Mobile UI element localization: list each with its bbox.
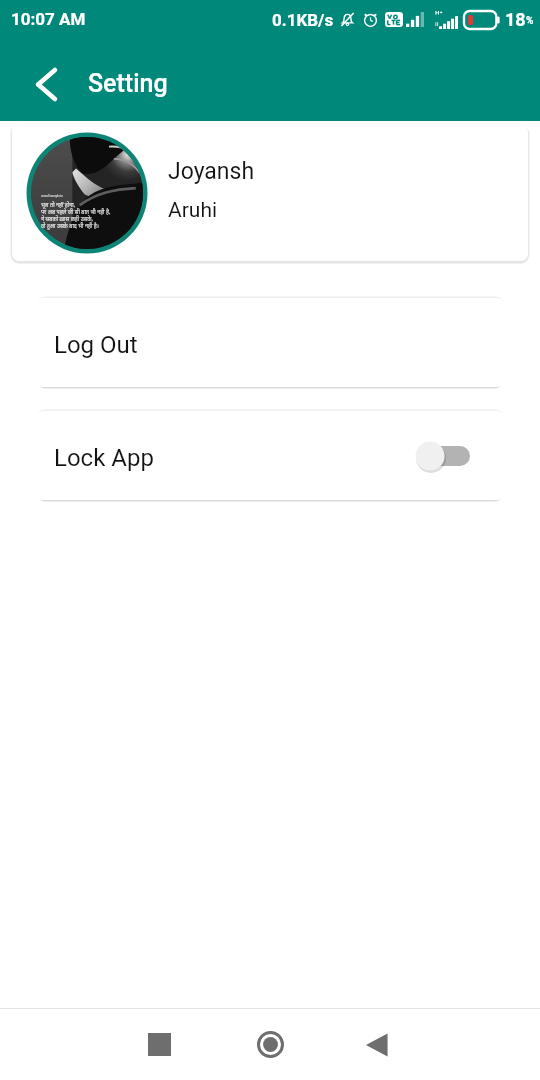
staticText: % [526,15,534,27]
button[interactable]: Lock App [37,411,503,500]
staticText: www.Example.in [41,194,64,198]
staticText: भूल तो नहीं होगा, पर अब पहले जी सी बात भ… [41,202,111,230]
button[interactable]: Recents [122,1009,196,1080]
button[interactable]: Log Out [37,298,503,387]
button[interactable]: Lock App toggle [416,439,470,473]
button[interactable]: Back [27,62,67,106]
staticText: 0.1KB/s [272,10,334,30]
staticText: Lock App [54,444,154,472]
staticText: Setting [88,69,168,98]
button[interactable]: Home [233,1009,307,1080]
staticText: 18 [505,9,526,30]
staticText: Joyansh [168,158,255,185]
staticText: 10:07 AM [11,9,86,29]
staticText: Log Out [54,331,138,359]
staticText: Aruhi [168,198,218,223]
button[interactable]: www.Example.in [12,124,528,261]
button[interactable]: Back [339,1009,413,1080]
